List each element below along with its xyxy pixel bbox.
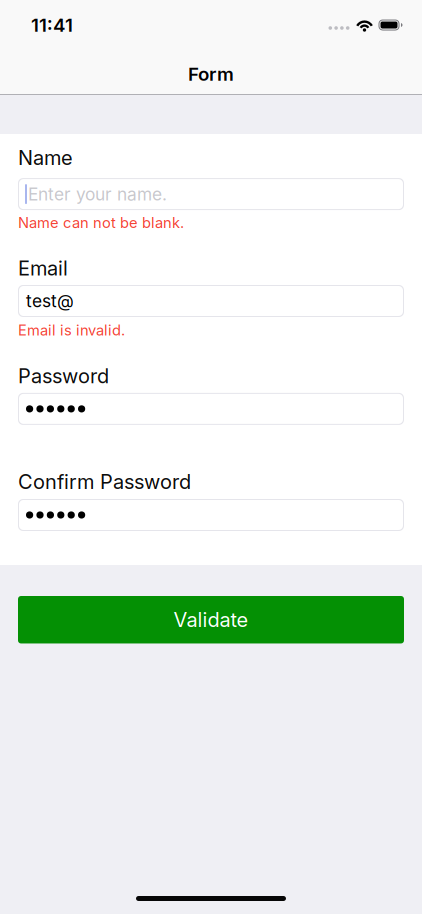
staticText: Enter your name. <box>28 184 167 204</box>
staticText: test@ <box>26 291 74 311</box>
staticText: Password <box>18 364 109 388</box>
button[interactable]: Password secure text field <box>18 393 404 425</box>
staticText: 11:41 <box>31 14 73 36</box>
staticText: Confirm Password <box>18 470 191 493</box>
staticText: Form <box>188 63 234 85</box>
staticText: Name <box>18 146 73 170</box>
button[interactable]: Confirm password secure text field <box>18 499 404 531</box>
button[interactable]: Validate <box>18 596 404 643</box>
button[interactable]: Email text field <box>18 285 404 317</box>
button[interactable]: Name text field <box>18 178 404 210</box>
staticText: Validate <box>173 608 248 631</box>
staticText: Email is invalid. <box>18 321 125 339</box>
staticText: Email <box>18 256 68 280</box>
staticText: Name can not be blank. <box>18 214 184 231</box>
